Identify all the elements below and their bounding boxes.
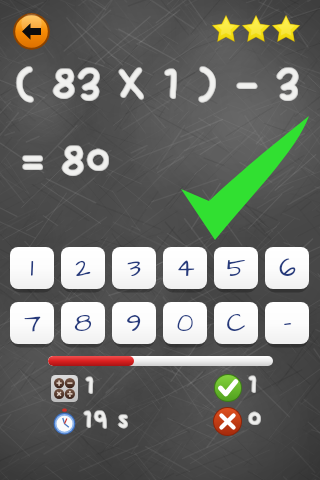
staticText: 1 (248, 370, 259, 398)
button[interactable] (48, 356, 273, 366)
button[interactable]: 9 (112, 302, 156, 347)
button[interactable]: Rating three stars (211, 15, 301, 43)
staticText: = 80 (21, 134, 112, 186)
staticText: 1 (248, 372, 259, 400)
staticText: 19 s (83, 406, 130, 434)
staticText: 1 (85, 371, 96, 399)
staticText: 1 (247, 371, 258, 399)
staticText: 1 (30, 249, 34, 287)
staticText: 0 (249, 406, 264, 434)
staticText: ( 83 X 1 ) - 3 (13, 58, 300, 110)
button[interactable]: Operations (51, 375, 78, 402)
staticText: 1 (86, 372, 97, 400)
staticText: 1 (86, 373, 97, 401)
staticText: 19 s (84, 406, 131, 434)
staticText: ( 83 X 1 ) - 3 (15, 58, 302, 110)
staticText: 0 (176, 304, 194, 342)
staticText: = 80 (21, 135, 112, 187)
button[interactable]: - (265, 302, 309, 347)
staticText: 9 (126, 304, 142, 342)
button[interactable]: 6 (265, 247, 309, 292)
staticText: 0 (247, 405, 262, 433)
staticText: 1 (249, 371, 260, 399)
staticText: 1 (85, 372, 96, 400)
staticText: 1 (248, 371, 259, 399)
button[interactable]: C (214, 302, 258, 347)
button[interactable]: Timer (51, 408, 78, 435)
staticText: 19 s (83, 407, 130, 435)
staticText: 19 s (84, 407, 131, 435)
staticText: 5 (226, 249, 246, 287)
button[interactable]: 1 (10, 247, 54, 292)
staticText: 0 (249, 405, 264, 433)
staticText: 4 (176, 249, 195, 287)
staticText: C (226, 304, 246, 342)
staticText: 6 (279, 249, 296, 287)
staticText: = 80 (22, 136, 113, 188)
staticText: 7 (24, 304, 41, 342)
staticText: ( 83 X 1 ) - 3 (14, 58, 301, 110)
staticText: 19 s (83, 405, 130, 433)
button[interactable]: Correct answers (214, 374, 242, 402)
staticText: 1 (85, 373, 96, 401)
staticText: 0 (248, 405, 263, 433)
staticText: - (283, 304, 292, 342)
staticText: 1 (249, 372, 260, 400)
staticText: 0 (248, 406, 263, 434)
staticText: = 80 (22, 135, 113, 187)
button[interactable]: 8 (61, 302, 105, 347)
button[interactable]: 4 (163, 247, 207, 292)
button[interactable]: 3 (112, 247, 156, 292)
staticText: 8 (74, 304, 92, 342)
staticText: ( 83 X 1 ) - 3 (14, 57, 301, 109)
button[interactable]: 2 (61, 247, 105, 292)
staticText: 1 (84, 372, 95, 400)
button[interactable]: 0 (163, 302, 207, 347)
staticText: = 80 (21, 136, 112, 188)
staticText: = 80 (20, 135, 111, 187)
button[interactable]: Wrong answers (213, 407, 242, 436)
staticText: ( 83 X 1 ) - 3 (14, 59, 301, 111)
button[interactable]: Back (13, 13, 50, 50)
staticText: 19 s (82, 406, 129, 434)
staticText: 3 (127, 249, 141, 287)
button[interactable]: 7 (10, 302, 54, 347)
button[interactable]: 5 (214, 247, 258, 292)
staticText: 2 (75, 249, 91, 287)
staticText: 0 (248, 404, 263, 432)
staticText: ( 83 X 1 ) - 3 (15, 59, 302, 111)
